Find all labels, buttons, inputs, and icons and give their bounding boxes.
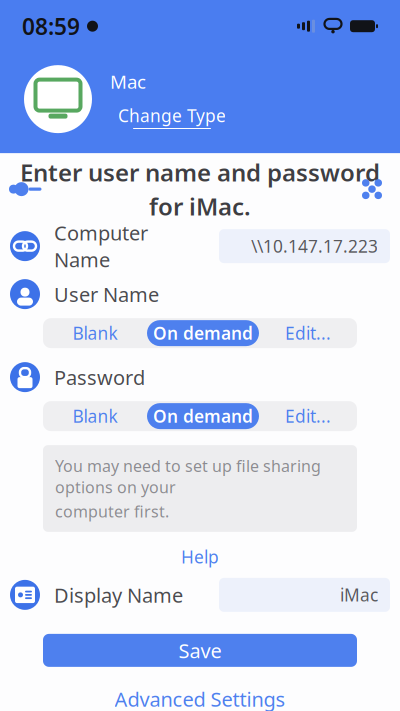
staticText: 08:59 [22, 11, 80, 41]
staticText: Enter user name and password [20, 156, 380, 188]
staticText: computer first. [55, 501, 169, 522]
button[interactable]: On demand [147, 403, 259, 429]
staticText: Mac [110, 69, 146, 94]
staticText: Password [54, 364, 145, 390]
staticText: iMac [340, 583, 378, 606]
button[interactable]: Close [349, 166, 395, 212]
staticText: \\10.147.17.223 [251, 235, 378, 258]
staticText: On demand [153, 322, 253, 345]
staticText: Change Type [118, 104, 226, 127]
staticText: Blank [72, 322, 117, 345]
staticText: Edit... [285, 322, 331, 345]
button[interactable]: Blank [43, 401, 147, 431]
staticText: Display Name [54, 582, 183, 608]
staticText: Blank [72, 405, 117, 428]
staticText: Advanced Settings [114, 686, 285, 711]
button[interactable]: Help [155, 544, 245, 570]
staticText: for iMac. [149, 190, 251, 222]
button[interactable]: Back [5, 166, 51, 212]
staticText: User Name [54, 281, 159, 307]
staticText: Help [181, 545, 219, 568]
button[interactable]: On demand [147, 320, 259, 346]
button[interactable]: Change Type [118, 104, 226, 129]
staticText: You may need to set up file sharing opti… [55, 455, 321, 498]
staticText: Save [178, 637, 221, 664]
staticText: Edit... [285, 405, 331, 428]
button[interactable]: Edit... [259, 401, 357, 431]
staticText: On demand [153, 405, 253, 428]
button[interactable]: Edit... [259, 318, 357, 348]
button[interactable]: Save [43, 634, 357, 667]
staticText: Computer Name [54, 220, 148, 273]
button[interactable]: Advanced Settings [90, 685, 310, 711]
button[interactable]: Blank [43, 318, 147, 348]
